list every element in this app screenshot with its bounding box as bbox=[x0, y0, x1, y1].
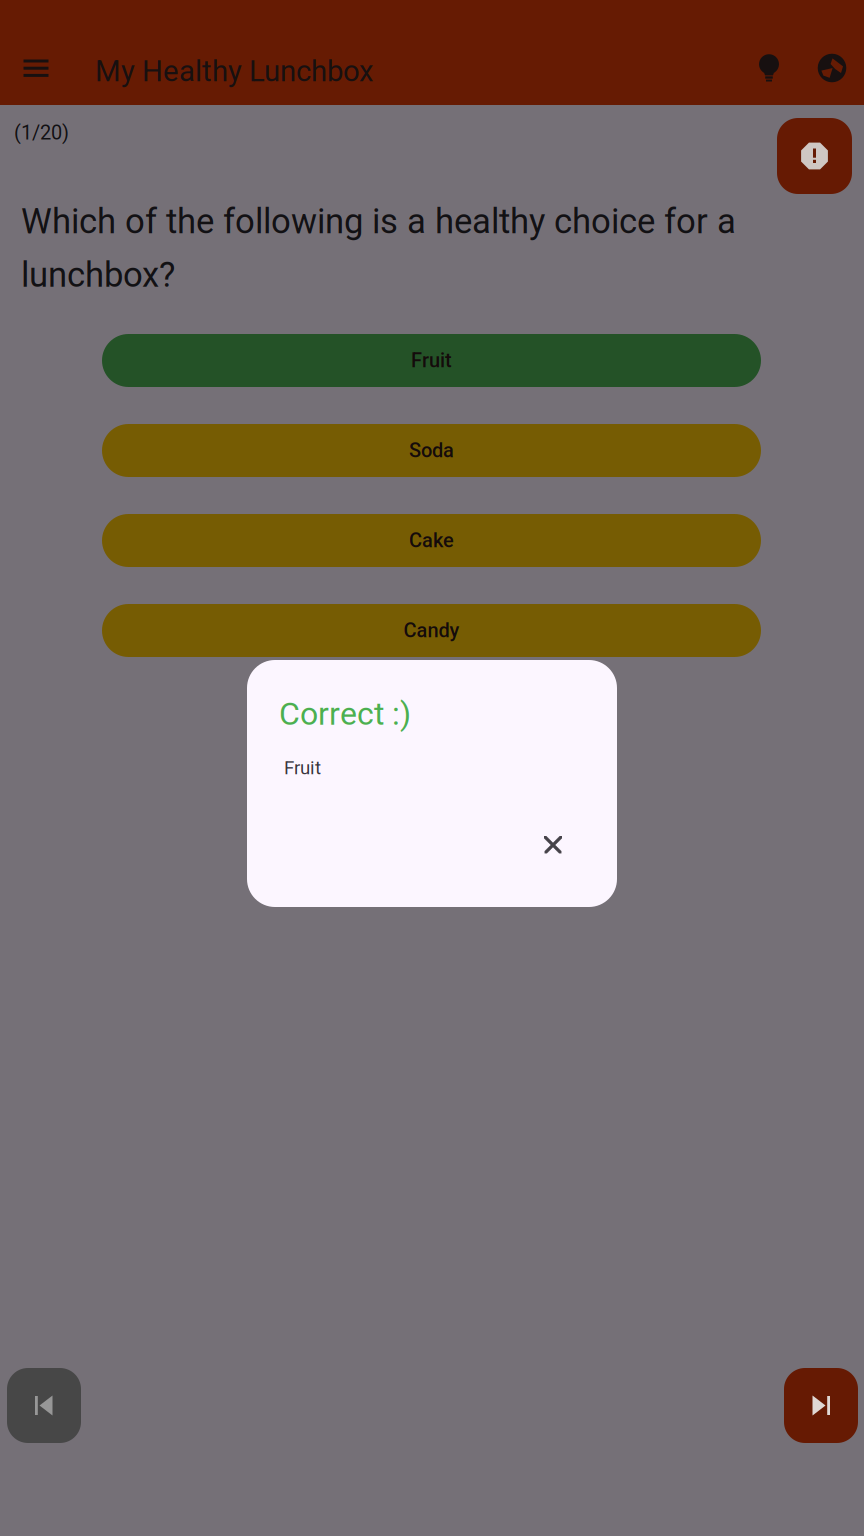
button[interactable]: Cake bbox=[102, 514, 761, 567]
button[interactable]: Report a problem bbox=[777, 118, 852, 194]
button[interactable]: Hint bbox=[745, 44, 793, 92]
staticText: (1/20) bbox=[14, 121, 69, 144]
staticText: Candy bbox=[403, 619, 459, 642]
staticText: Correct :) bbox=[279, 695, 411, 732]
staticText: Fruit bbox=[411, 349, 452, 372]
button[interactable]: Next question bbox=[784, 1368, 858, 1443]
staticText: My Healthy Lunchbox bbox=[95, 54, 374, 88]
staticText: Fruit bbox=[284, 757, 321, 779]
button[interactable]: Soda bbox=[102, 424, 761, 477]
button[interactable]: Change language bbox=[808, 44, 856, 92]
button[interactable]: Menu bbox=[8, 40, 64, 96]
staticText: Which of the following is a healthy choi… bbox=[21, 201, 736, 295]
button[interactable]: Close bbox=[531, 823, 575, 867]
staticText: Soda bbox=[409, 439, 454, 462]
staticText: Cake bbox=[409, 529, 454, 552]
button[interactable]: Fruit bbox=[102, 334, 761, 387]
button[interactable]: Previous question bbox=[7, 1368, 81, 1443]
button[interactable]: Candy bbox=[102, 604, 761, 657]
